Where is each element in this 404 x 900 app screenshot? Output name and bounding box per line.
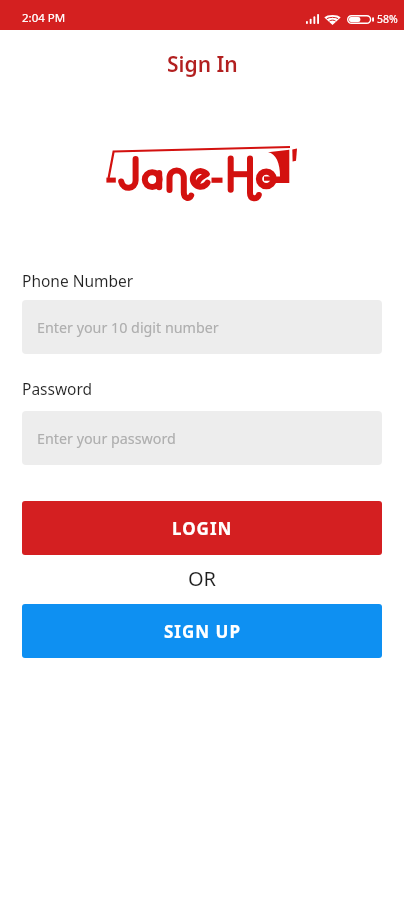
staticText: Phone Number [22,270,134,291]
button[interactable]: LOGIN [22,501,382,555]
staticText: Password [22,378,93,399]
staticText: 58% [377,12,398,26]
button[interactable]: Sign In [167,50,238,79]
staticText: Enter your 10 digit number [37,318,219,337]
button[interactable]: Enter your password [22,411,382,465]
button[interactable]: OR [188,565,217,592]
staticText: LOGIN [172,517,233,540]
staticText: Enter your password [37,429,176,448]
other: Jane-Ho logo [104,144,300,204]
button[interactable]: Enter your 10 digit number [22,300,382,354]
button[interactable]: SIGN UP [22,604,382,658]
staticText: SIGN UP [164,620,241,643]
staticText: 2:04 PM [22,10,66,26]
